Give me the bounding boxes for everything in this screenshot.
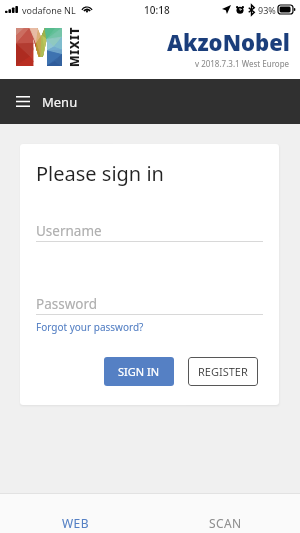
- staticText: Password: [36, 295, 98, 313]
- button[interactable]: SCAN: [150, 494, 300, 533]
- staticText: Menu: [42, 93, 78, 111]
- staticText: WEB: [62, 515, 89, 531]
- staticText: REGISTER: [198, 364, 248, 379]
- staticText: vodafone NL: [22, 4, 76, 16]
- button[interactable]: SIGN IN: [104, 357, 174, 386]
- button[interactable]: REGISTER: [188, 357, 258, 386]
- staticText: SCAN: [209, 515, 242, 531]
- staticText: v 2018.7.3.1 West Europe: [195, 58, 290, 69]
- staticText: 10:18: [144, 3, 170, 17]
- staticText: Username: [36, 222, 102, 240]
- staticText: Please sign in: [36, 160, 164, 187]
- button[interactable]: Password: [36, 295, 263, 315]
- button[interactable]: Username: [36, 222, 263, 242]
- staticText: SIGN IN: [118, 364, 160, 379]
- button[interactable]: Forgot your password?: [36, 320, 144, 334]
- button[interactable]: WEB: [0, 494, 150, 533]
- staticText: AkzoNobel: [167, 27, 290, 57]
- staticText: MIXIT: [66, 27, 80, 67]
- staticText: 93%: [258, 4, 276, 16]
- button[interactable]: Menu: [0, 79, 300, 124]
